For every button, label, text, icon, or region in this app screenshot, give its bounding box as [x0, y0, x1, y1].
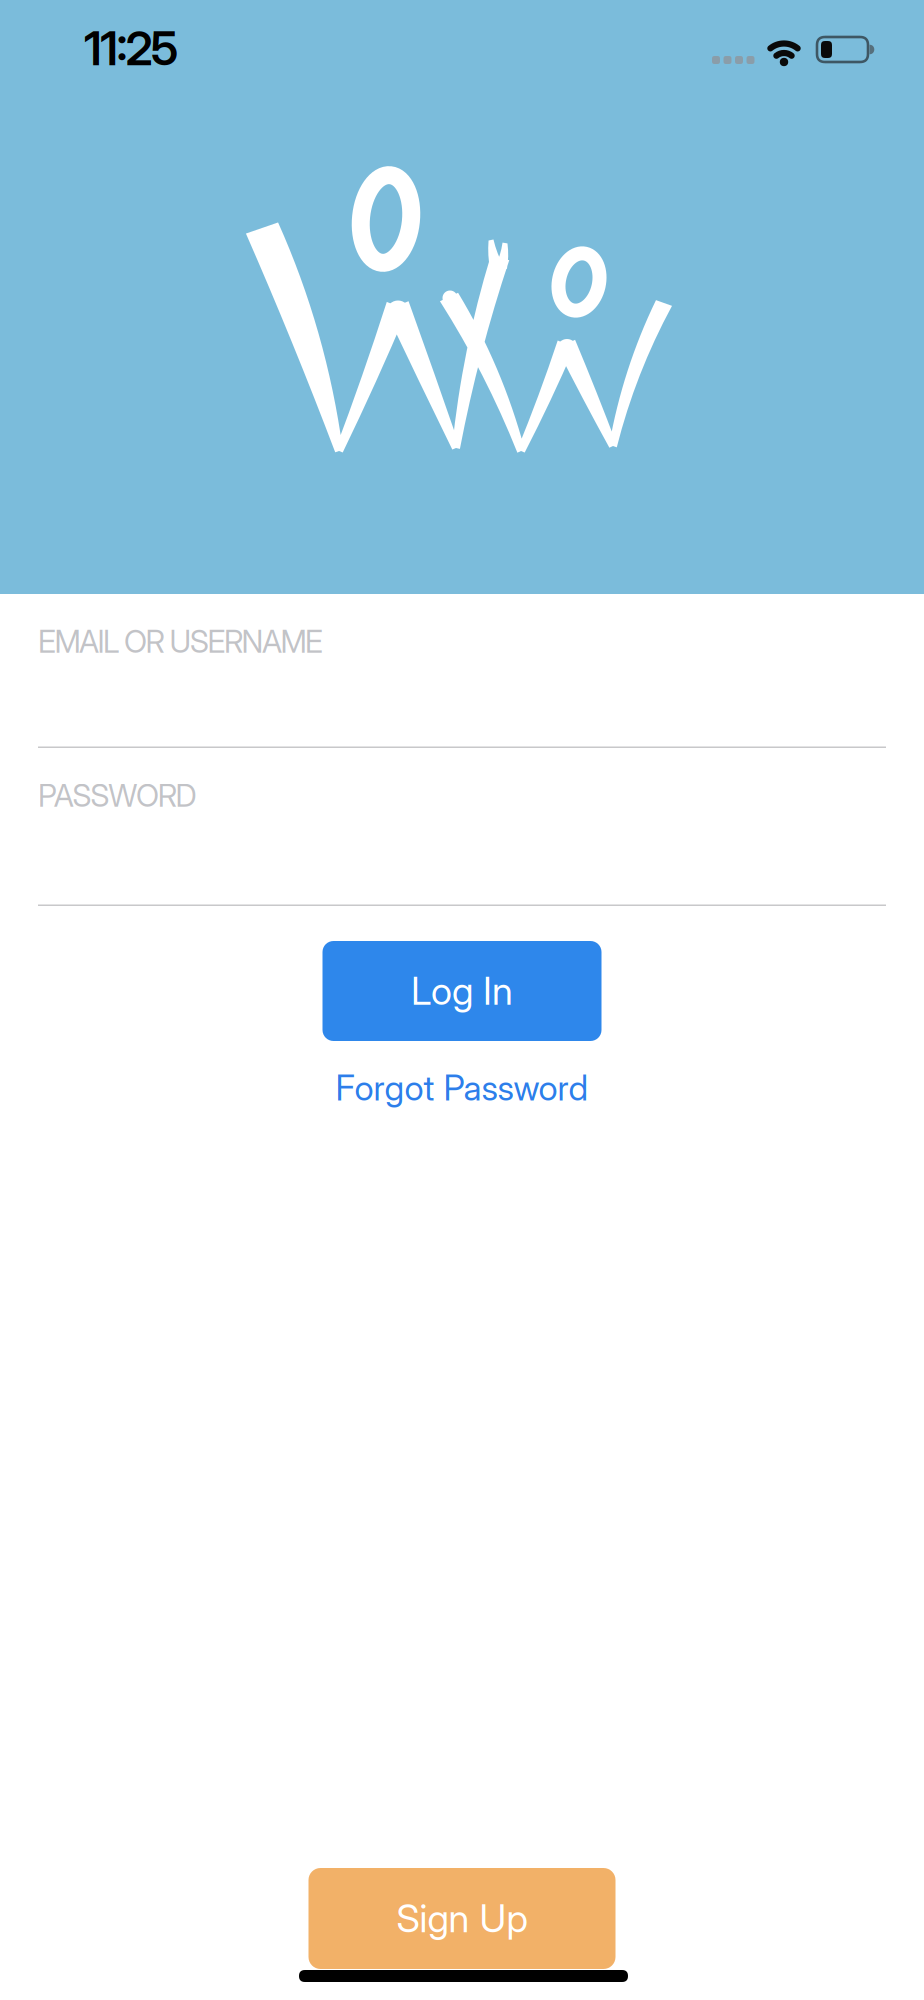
button[interactable]: Forgot Password [335, 1067, 588, 1109]
button[interactable]: Sign Up [308, 1868, 615, 1969]
button[interactable]: Email or username [0, 594, 924, 748]
staticText: Forgot Password [335, 1067, 588, 1109]
staticText: EMAIL OR USERNAME [38, 623, 323, 660]
staticText: 11:25 [84, 20, 179, 76]
staticText: Sign Up [396, 1895, 527, 1941]
button[interactable]: Log In [322, 941, 601, 1041]
staticText: Log In [411, 968, 513, 1014]
button[interactable]: Password [0, 748, 924, 906]
staticText: PASSWORD [38, 777, 197, 814]
